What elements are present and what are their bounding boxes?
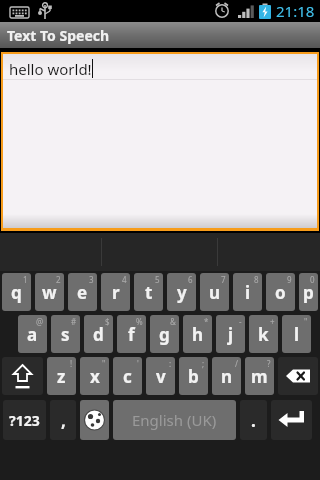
button[interactable]: 7 bbox=[200, 273, 229, 311]
button[interactable]: 5 bbox=[134, 273, 163, 311]
button[interactable]: ?123 bbox=[3, 400, 46, 440]
staticText: t bbox=[145, 281, 153, 304]
staticText: hello world! bbox=[9, 59, 92, 79]
button[interactable]: & bbox=[150, 315, 179, 353]
button[interactable]: ; bbox=[179, 357, 208, 395]
staticText: w bbox=[42, 281, 57, 304]
button[interactable]: 3 bbox=[68, 273, 97, 311]
staticText: 6 bbox=[188, 274, 193, 285]
button[interactable]: Enter bbox=[271, 400, 312, 440]
staticText: g bbox=[159, 323, 170, 346]
staticText: z bbox=[57, 365, 66, 388]
button[interactable]: @ bbox=[18, 315, 47, 353]
button[interactable]: " bbox=[80, 357, 109, 395]
button[interactable]: Change language bbox=[80, 400, 109, 440]
staticText: y bbox=[177, 281, 187, 304]
staticText: v bbox=[156, 365, 166, 388]
staticText: s bbox=[61, 323, 70, 346]
button[interactable]: $ bbox=[84, 315, 113, 353]
staticText: x bbox=[90, 365, 100, 388]
button[interactable]: Delete bbox=[278, 357, 318, 395]
button[interactable]: : bbox=[146, 357, 175, 395]
button[interactable]: " bbox=[282, 315, 311, 353]
staticText: d bbox=[93, 323, 104, 346]
button[interactable]: Space bbox=[113, 400, 236, 440]
button[interactable]: - bbox=[216, 315, 245, 353]
staticText: 7 bbox=[221, 274, 226, 285]
staticText: / bbox=[235, 358, 238, 369]
staticText: ?123 bbox=[9, 411, 40, 430]
staticText: 5 bbox=[155, 274, 160, 285]
staticText: m bbox=[251, 365, 268, 388]
staticText: 2 bbox=[56, 274, 61, 285]
button[interactable]: 8 bbox=[233, 273, 262, 311]
staticText: k bbox=[258, 323, 269, 346]
staticText: a bbox=[27, 323, 38, 346]
staticText: + bbox=[270, 316, 275, 327]
staticText: p bbox=[303, 281, 314, 304]
staticText: f bbox=[128, 323, 135, 346]
button[interactable]: + bbox=[249, 315, 278, 353]
button[interactable]: 1 bbox=[2, 273, 31, 311]
staticText: ; bbox=[202, 358, 205, 369]
staticText: Text To Speech bbox=[7, 26, 110, 45]
staticText: 0 bbox=[310, 274, 315, 285]
staticText: ? bbox=[267, 358, 271, 369]
staticText: i bbox=[245, 281, 251, 304]
staticText: ! bbox=[70, 358, 73, 369]
staticText: : bbox=[169, 358, 172, 369]
button[interactable]: / bbox=[212, 357, 241, 395]
staticText: 8 bbox=[254, 274, 259, 285]
staticText: u bbox=[209, 281, 221, 304]
button[interactable]: . bbox=[240, 400, 267, 440]
staticText: c bbox=[123, 365, 132, 388]
staticText: ' bbox=[137, 358, 139, 369]
staticText: 3 bbox=[89, 274, 94, 285]
button[interactable]: 6 bbox=[167, 273, 196, 311]
staticText: 21:18 bbox=[276, 1, 315, 21]
staticText: 9 bbox=[287, 274, 292, 285]
button[interactable]: Shift bbox=[2, 357, 43, 395]
button[interactable]: 0 bbox=[299, 273, 318, 311]
staticText: e bbox=[77, 281, 88, 304]
staticText: j bbox=[228, 323, 234, 346]
staticText: % bbox=[136, 316, 143, 327]
staticText: h bbox=[192, 323, 204, 346]
button[interactable]: ' bbox=[113, 357, 142, 395]
staticText: - bbox=[239, 316, 242, 327]
button[interactable]: % bbox=[117, 315, 146, 353]
button[interactable]: 2 bbox=[35, 273, 64, 311]
button[interactable]: # bbox=[51, 315, 80, 353]
staticText: * bbox=[204, 316, 209, 327]
staticText: 1 bbox=[23, 274, 28, 285]
staticText: r bbox=[112, 281, 120, 304]
staticText: # bbox=[71, 316, 77, 327]
staticText: @ bbox=[36, 316, 44, 327]
staticText: o bbox=[275, 281, 286, 304]
button[interactable]: , bbox=[50, 400, 76, 440]
staticText: , bbox=[61, 409, 66, 432]
button[interactable]: ! bbox=[47, 357, 76, 395]
staticText: 4 bbox=[122, 274, 127, 285]
staticText: l bbox=[294, 323, 300, 346]
staticText: & bbox=[170, 316, 176, 327]
staticText: $ bbox=[105, 316, 110, 327]
staticText: English (UK) bbox=[132, 410, 217, 430]
staticText: b bbox=[188, 365, 199, 388]
staticText: n bbox=[221, 365, 233, 388]
button[interactable]: 4 bbox=[101, 273, 130, 311]
staticText: " bbox=[102, 358, 106, 369]
staticText: . bbox=[251, 409, 256, 432]
button[interactable]: hello world! bbox=[3, 54, 317, 228]
staticText: " bbox=[304, 316, 308, 327]
button[interactable]: 9 bbox=[266, 273, 295, 311]
button[interactable]: ? bbox=[245, 357, 274, 395]
staticText: q bbox=[11, 281, 22, 304]
button[interactable]: * bbox=[183, 315, 212, 353]
